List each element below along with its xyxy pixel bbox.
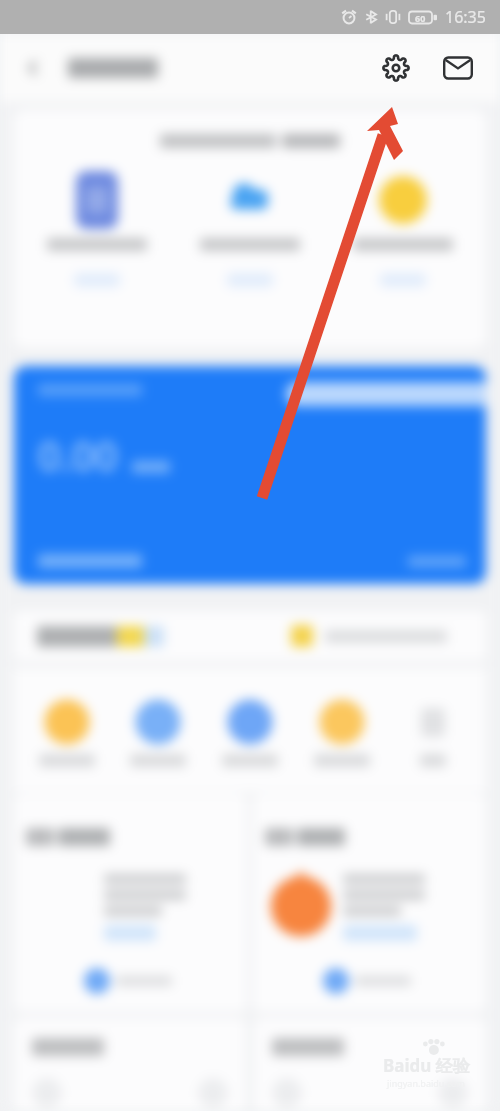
button[interactable] [28, 699, 106, 767]
staticText: 60 [415, 12, 426, 24]
button[interactable] [37, 626, 251, 647]
button[interactable] [291, 625, 466, 647]
button[interactable] [14, 1018, 246, 1111]
button[interactable] [14, 794, 247, 1012]
button[interactable] [394, 699, 472, 767]
button[interactable] [180, 168, 320, 287]
staticText: jingyan.baidu.com [387, 1077, 465, 1089]
staticText: 0.00 [38, 428, 118, 482]
button[interactable] [211, 699, 289, 767]
button[interactable] [27, 168, 167, 287]
button[interactable]: Mail [438, 48, 478, 88]
button[interactable] [303, 699, 381, 767]
button[interactable]: Back [16, 51, 50, 85]
staticText: 16:35 [445, 6, 486, 28]
button[interactable] [286, 382, 486, 406]
button[interactable] [119, 699, 197, 767]
button[interactable] [253, 794, 486, 1012]
button[interactable] [333, 168, 473, 287]
button[interactable]: Settings [376, 48, 416, 88]
button[interactable] [254, 1018, 486, 1111]
staticText: Baidu 经验 [383, 1054, 470, 1077]
